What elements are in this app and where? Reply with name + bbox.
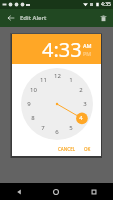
button[interactable]: 3 [80, 99, 90, 109]
button[interactable]: 2 [76, 85, 86, 95]
button[interactable]: 8 [28, 113, 38, 123]
staticText: 9 [27, 100, 31, 108]
button[interactable]: 4:33 [42, 36, 82, 63]
button[interactable]: 5 [66, 123, 76, 133]
button[interactable]: 11 [38, 75, 48, 85]
staticText: 12 [54, 72, 61, 80]
button[interactable]: OK [80, 144, 95, 154]
button[interactable]: Delete [96, 11, 110, 25]
button[interactable]: Navigate up [4, 11, 18, 25]
button[interactable]: 1 [66, 75, 76, 85]
staticText: 1 [69, 76, 73, 84]
staticText: 4 [79, 114, 83, 122]
staticText: CANCEL [58, 146, 76, 152]
button[interactable]: AM [83, 42, 92, 49]
button[interactable]: Recent apps [75, 183, 113, 200]
staticText: 7 [41, 124, 45, 132]
staticText: 5 [69, 124, 73, 132]
staticText: OK [84, 146, 91, 152]
staticText: 2 [79, 86, 83, 94]
button[interactable]: 10 [28, 85, 38, 95]
staticText: 10 [30, 86, 37, 94]
staticText: 3 [83, 100, 87, 108]
staticText: 8 [31, 114, 35, 122]
staticText: 4:35 [101, 1, 111, 8]
button[interactable]: 7 [38, 123, 48, 133]
button[interactable]: PM [83, 50, 92, 57]
button[interactable]: 4 [76, 113, 86, 123]
button[interactable]: 12 [52, 71, 62, 81]
button[interactable]: 6 [52, 127, 62, 137]
staticText: 6 [55, 128, 59, 136]
button[interactable]: Home [37, 183, 75, 200]
button[interactable]: Back [0, 183, 37, 200]
button[interactable]: 9 [24, 99, 34, 109]
staticText: Edit Alert [20, 14, 47, 22]
button[interactable]: CANCEL [54, 144, 80, 154]
staticText: 11 [40, 76, 47, 84]
